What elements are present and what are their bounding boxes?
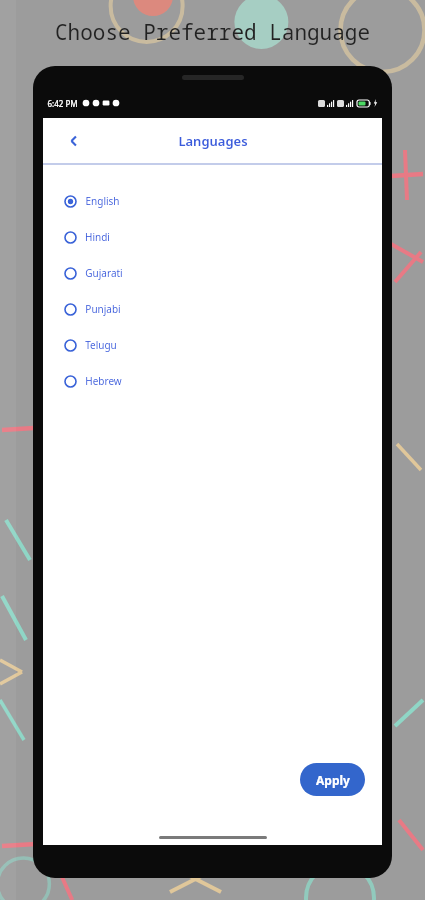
button[interactable]: Apply [300, 763, 365, 796]
staticText: Choose Preferred Language [55, 18, 370, 47]
button[interactable]: Hindi [43, 219, 382, 255]
button[interactable]: Telugu [43, 327, 382, 363]
staticText: Punjabi [85, 302, 121, 316]
staticText: Apply [316, 772, 350, 788]
staticText: Hebrew [85, 374, 122, 388]
button[interactable]: Hebrew [43, 363, 382, 399]
button[interactable]: Gujarati [43, 255, 382, 291]
staticText: Languages [178, 132, 248, 150]
staticText: Telugu [85, 338, 117, 352]
staticText: English [85, 194, 120, 208]
staticText: 6:42 PM [47, 98, 78, 109]
button[interactable]: Back [57, 124, 91, 158]
button[interactable]: English [43, 183, 382, 219]
staticText: Hindi [85, 230, 110, 244]
staticText: Gujarati [85, 266, 123, 280]
button[interactable]: Punjabi [43, 291, 382, 327]
